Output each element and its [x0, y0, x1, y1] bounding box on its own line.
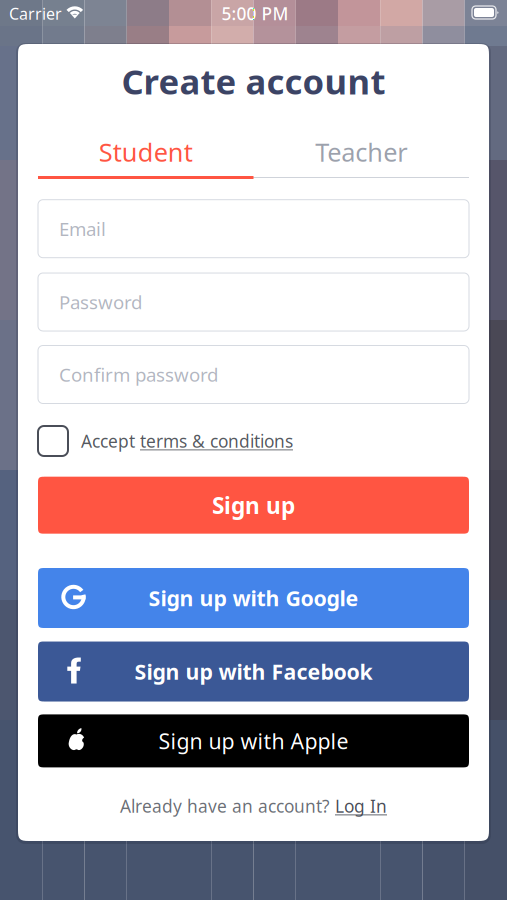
staticText: Teacher [315, 135, 407, 169]
staticText: Already have an account? [120, 794, 330, 817]
button[interactable]: terms & conditions [140, 429, 293, 452]
staticText: Student [99, 135, 193, 169]
button[interactable]: Already have an account? [38, 789, 469, 823]
button[interactable]: Password [38, 273, 469, 331]
staticText: Sign up [212, 490, 295, 520]
button[interactable]: Sign up with Apple [38, 714, 469, 767]
staticText: terms & conditions [140, 429, 293, 452]
staticText: Email [59, 216, 106, 241]
button[interactable]: Student [38, 130, 253, 174]
button[interactable]: Email [38, 200, 469, 258]
button[interactable]: Sign up [38, 477, 469, 534]
button[interactable]: Confirm password [38, 345, 469, 403]
staticText: Log In [335, 794, 387, 817]
staticText: 5:00 PM [221, 2, 288, 25]
staticText: Create account [121, 58, 385, 104]
staticText: Carrier [9, 3, 62, 24]
staticText: Sign up with Facebook [134, 657, 372, 686]
button[interactable]: Teacher [253, 130, 469, 174]
staticText: Sign up with Apple [158, 727, 348, 755]
button[interactable]: Sign up with Facebook [38, 641, 469, 701]
button[interactable]: Sign up with Google [38, 568, 469, 628]
staticText: Confirm password [59, 362, 218, 387]
staticText: Password [59, 290, 142, 314]
staticText: Sign up with Google [148, 584, 358, 612]
staticText: Accept [81, 429, 140, 452]
button[interactable]: Accept terms and conditions [38, 426, 68, 456]
